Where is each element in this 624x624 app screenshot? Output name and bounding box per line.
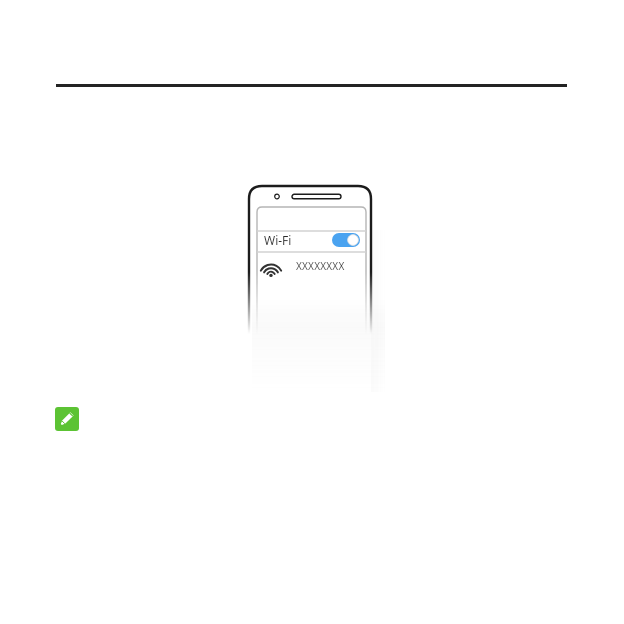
staticText: Wi-Fi: [264, 232, 292, 248]
staticText: XXXXXXXX: [296, 259, 345, 273]
button[interactable]: Edit: [55, 407, 79, 431]
